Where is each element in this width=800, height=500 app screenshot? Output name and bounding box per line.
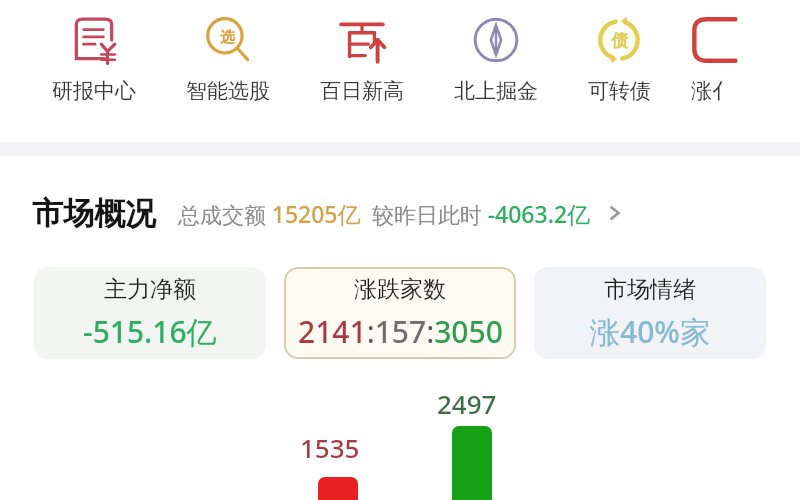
button[interactable]: 智能选股 [172, 0, 284, 140]
staticText: 涨跌家数 [354, 275, 446, 304]
staticText: 选 [220, 28, 235, 47]
staticText: 可转债 [588, 78, 651, 104]
staticText: 2497 [437, 386, 497, 421]
button[interactable]: 可转债 [574, 0, 664, 140]
staticText: 百日新高 [320, 78, 404, 104]
other: 可转债 [593, 14, 645, 66]
button[interactable]: 百日新高 [306, 0, 418, 140]
staticText: 涨40%家 [590, 311, 710, 352]
button[interactable]: 市场情绪 [534, 267, 766, 359]
button[interactable]: 北上掘金 [440, 0, 552, 140]
staticText: 2141:157:3050 [298, 311, 503, 352]
staticText: 研报中心 [52, 78, 136, 104]
staticText: 债 [611, 30, 628, 51]
staticText: 主力净额 [104, 275, 196, 304]
staticText: 总成交额 15205亿 较昨日此时 -4063.2亿 [178, 198, 591, 229]
other: 智能选股 [202, 14, 254, 66]
staticText: 市场概况 [32, 194, 156, 233]
other: 研报中心 [68, 14, 120, 66]
staticText: -515.16亿 [83, 311, 217, 352]
staticText: 智能选股 [186, 78, 270, 104]
other: 百日新高 [336, 14, 388, 66]
staticText: 涨亻 [691, 78, 733, 104]
button[interactable]: 涨跌家数 [284, 267, 516, 359]
button[interactable]: 研报中心 [38, 0, 150, 140]
button[interactable]: 主力净额 [34, 267, 266, 359]
staticText: 市场情绪 [604, 275, 696, 304]
button[interactable]: 涨停 [682, 0, 742, 140]
staticText: 1535 [300, 430, 360, 465]
other: 涨停 [686, 14, 738, 66]
staticText: 北上掘金 [454, 78, 538, 104]
other: 北上掘金 [470, 14, 522, 66]
button[interactable]: 市场概况 [0, 185, 800, 241]
